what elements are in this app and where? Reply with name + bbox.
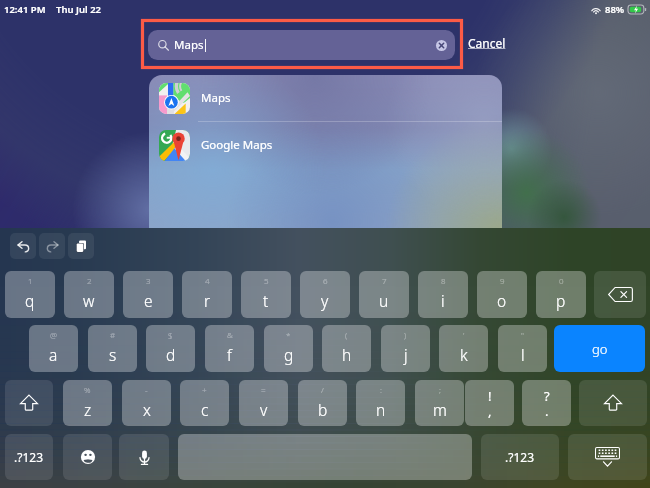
staticText: 88% — [605, 3, 625, 16]
button[interactable]: - — [122, 380, 171, 426]
staticText: .?123 — [14, 449, 44, 465]
button[interactable]: 1 — [5, 271, 55, 318]
staticText: ( — [345, 329, 348, 340]
button[interactable]: ) — [381, 325, 430, 372]
button[interactable]: @ — [29, 325, 78, 372]
button[interactable]: = — [239, 380, 288, 426]
staticText: 9 — [500, 275, 505, 286]
button[interactable]: Redo — [39, 233, 65, 259]
staticText: j — [404, 344, 408, 365]
staticText: / — [321, 384, 324, 395]
button[interactable]: 7 — [359, 271, 409, 318]
staticText: t — [263, 290, 269, 311]
staticText: 1 — [28, 275, 33, 286]
button[interactable]: 2 — [64, 271, 114, 318]
staticText: - — [145, 384, 148, 395]
staticText: Maps — [174, 37, 204, 53]
staticText: 4 — [205, 275, 210, 286]
staticText: e — [144, 290, 153, 311]
staticText: n — [376, 399, 386, 420]
button[interactable]: $ — [146, 325, 195, 372]
staticText: r — [204, 290, 211, 311]
button[interactable]: Maps — [148, 30, 455, 60]
button[interactable]: Backspace — [594, 271, 646, 318]
staticText: : — [380, 384, 382, 395]
staticText: 12:41 PM — [4, 3, 46, 16]
staticText: u — [379, 290, 389, 311]
button[interactable]: ! — [465, 380, 514, 426]
button[interactable]: Cancel — [466, 32, 508, 54]
staticText: ! — [488, 387, 492, 405]
button[interactable]: / — [298, 380, 347, 426]
staticText: Google Maps — [201, 137, 273, 153]
button[interactable]: Undo — [10, 233, 36, 259]
staticText: 0 — [559, 275, 564, 286]
staticText: , — [488, 402, 492, 420]
button[interactable]: Maps — [149, 75, 502, 121]
staticText: c — [201, 399, 209, 420]
staticText: w — [83, 290, 95, 311]
staticText: Maps — [201, 90, 231, 106]
button[interactable]: Dictate — [119, 434, 169, 480]
staticText: y — [321, 290, 329, 311]
staticText: o — [497, 290, 507, 311]
button[interactable]: * — [264, 325, 313, 372]
button[interactable]: Space — [178, 434, 472, 480]
staticText: x — [143, 399, 151, 420]
button[interactable]: Hide keyboard — [568, 434, 647, 480]
button[interactable]: % — [63, 380, 112, 426]
button[interactable]: 3 — [123, 271, 173, 318]
button[interactable]: 6 — [300, 271, 350, 318]
button[interactable]: & — [205, 325, 254, 372]
button[interactable]: Google Maps — [149, 122, 502, 168]
staticText: ' — [463, 329, 465, 340]
staticText: * — [286, 329, 291, 340]
button[interactable]: ; — [415, 380, 464, 426]
button[interactable]: " — [498, 325, 547, 372]
staticText: # — [110, 329, 116, 340]
button[interactable]: Shift — [579, 380, 647, 426]
staticText: a — [49, 344, 58, 365]
staticText: & — [227, 329, 233, 340]
button[interactable]: 5 — [241, 271, 291, 318]
staticText: 2 — [87, 275, 92, 286]
staticText: q — [25, 290, 35, 311]
staticText: h — [342, 344, 352, 365]
staticText: b — [318, 399, 328, 420]
staticText: go — [592, 340, 608, 358]
button[interactable]: .?123 — [5, 434, 53, 480]
staticText: k — [460, 344, 468, 365]
button[interactable]: 9 — [477, 271, 527, 318]
staticText: ? — [544, 387, 550, 405]
button[interactable]: 8 — [418, 271, 468, 318]
staticText: 7 — [382, 275, 387, 286]
button[interactable]: go — [554, 325, 645, 372]
staticText: l — [521, 344, 525, 365]
staticText: s — [109, 344, 117, 365]
button[interactable]: Emoji — [63, 434, 112, 480]
button[interactable]: : — [356, 380, 405, 426]
staticText: + — [202, 384, 207, 395]
button[interactable]: ( — [322, 325, 371, 372]
staticText: 8 — [441, 275, 446, 286]
button[interactable]: .?123 — [481, 434, 559, 480]
staticText: d — [166, 344, 176, 365]
button[interactable]: 4 — [182, 271, 232, 318]
staticText: Cancel — [468, 35, 506, 51]
staticText: g — [284, 344, 294, 365]
button[interactable]: ? — [522, 380, 571, 426]
button[interactable]: ' — [439, 325, 488, 372]
staticText: f — [227, 344, 232, 365]
staticText: . — [545, 402, 549, 420]
staticText: v — [260, 399, 268, 420]
button[interactable]: 0 — [536, 271, 586, 318]
staticText: z — [84, 399, 92, 420]
button[interactable]: Paste — [68, 233, 94, 259]
staticText: i — [441, 290, 445, 311]
button[interactable]: + — [180, 380, 229, 426]
staticText: " — [521, 329, 524, 340]
button[interactable]: # — [88, 325, 137, 372]
staticText: p — [556, 290, 566, 311]
button[interactable]: Shift — [5, 380, 53, 426]
staticText: 3 — [146, 275, 151, 286]
